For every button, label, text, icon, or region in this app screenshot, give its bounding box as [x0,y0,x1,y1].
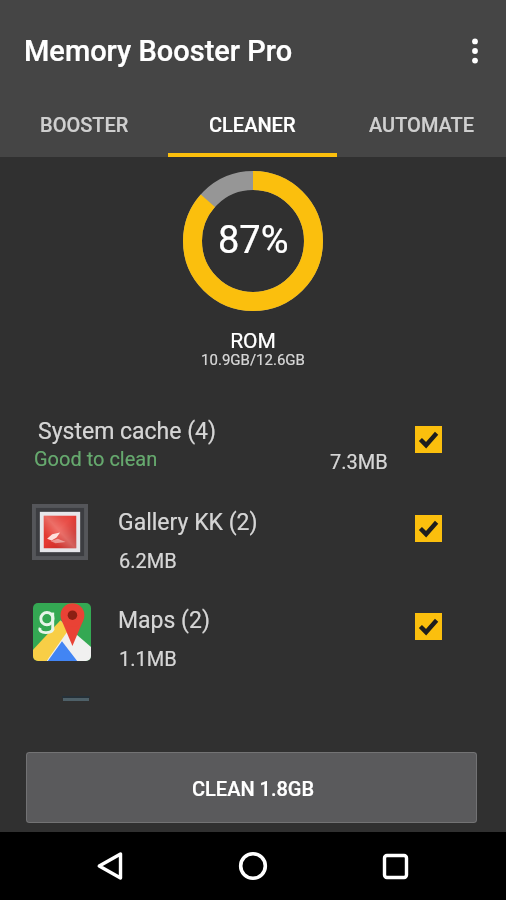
staticText: 6.2MB [119,549,177,572]
staticText: 1.1MB [119,647,177,670]
staticText: AUTOMATE [369,113,475,136]
button[interactable]: Back [80,835,142,897]
staticText: Gallery KK (2) [118,509,258,536]
button[interactable]: System cache (4) [0,404,506,489]
button[interactable]: Recent apps [364,835,426,897]
staticText: CLEANER [209,113,296,136]
button[interactable]: Maps (2) [0,593,506,681]
staticText: 10.9GB/12.6GB [0,351,506,369]
staticText: System cache (4) [38,418,216,445]
button[interactable]: BOOSTER [0,95,168,157]
button[interactable]: AUTOMATE [337,95,506,157]
button[interactable]: Selected [415,515,442,542]
staticText: BOOSTER [40,113,129,136]
staticText: CLEAN 1.8GB [192,777,315,800]
button[interactable]: Selected [415,613,442,640]
button[interactable]: Selected [415,426,442,453]
button[interactable]: More options [447,23,503,79]
button[interactable]: CLEAN 1.8GB [26,752,477,823]
button[interactable]: Gallery KK (2) [0,495,506,583]
staticText: Memory Booster Pro [24,34,293,68]
staticText: 87% [218,218,289,263]
button[interactable]: Home [222,835,284,897]
button[interactable]: CLEANER [168,95,337,157]
staticText: 7.3MB [330,450,388,473]
staticText: ROM [0,329,506,354]
staticText: Good to clean [34,447,158,470]
staticText: Maps (2) [118,607,210,634]
